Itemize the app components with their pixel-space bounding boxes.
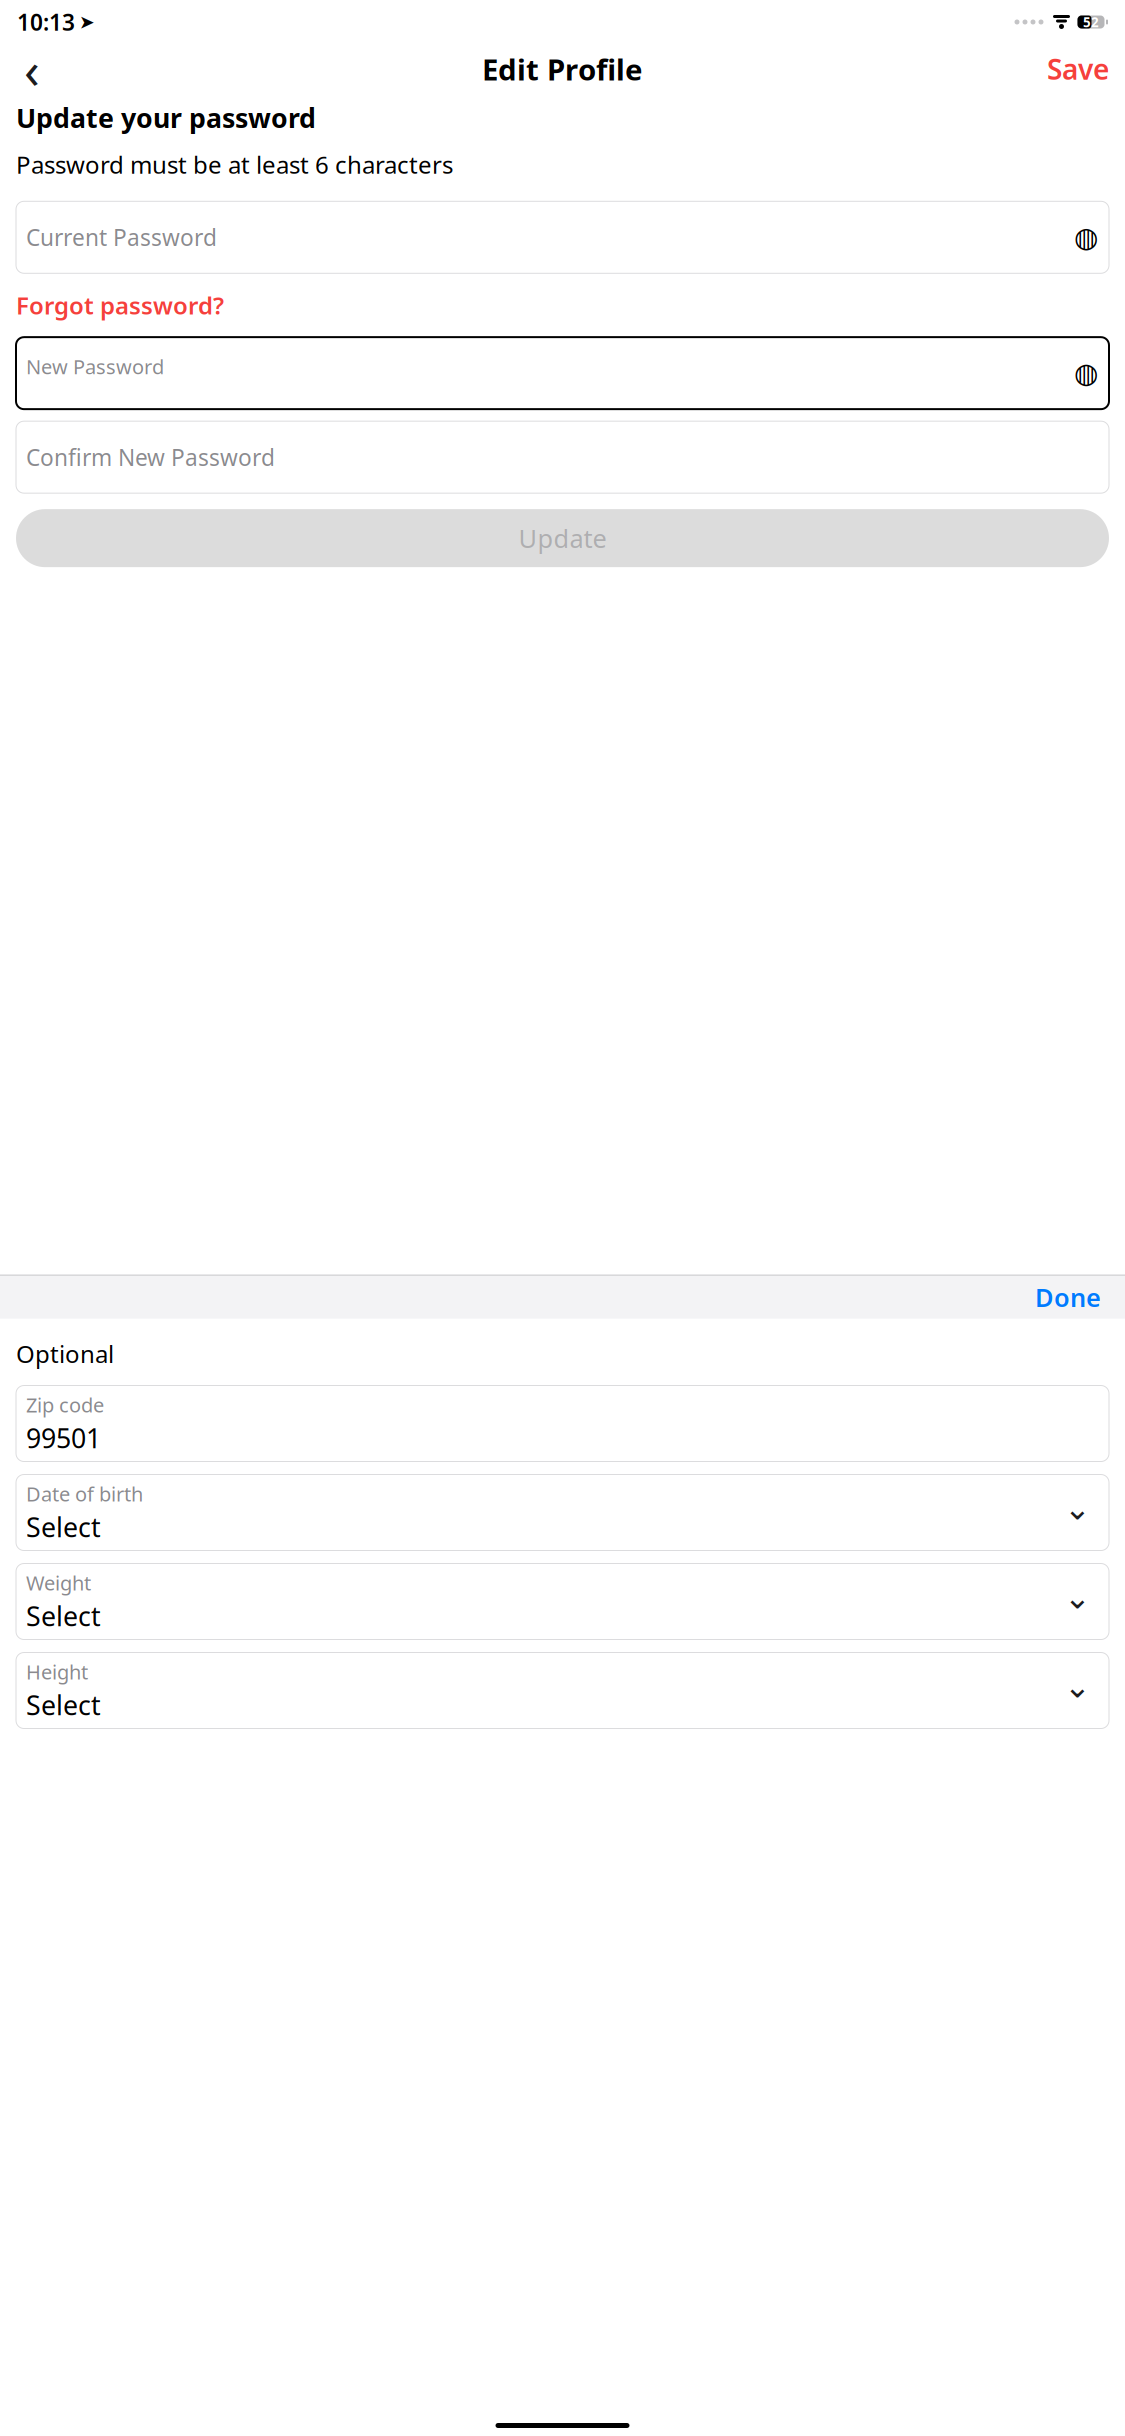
staticText: Select	[26, 1687, 101, 1722]
button[interactable]: Forgot password?	[16, 285, 224, 325]
button[interactable]: Back	[10, 47, 54, 91]
button[interactable]: Done	[1025, 1274, 1111, 1320]
staticText: Optional	[16, 1338, 114, 1369]
staticText: Done	[1035, 1280, 1101, 1314]
staticText: Current Password	[26, 222, 217, 252]
staticText: Edit Profile	[482, 49, 643, 88]
button[interactable]: Date of birth	[16, 1474, 1109, 1550]
staticText: ‹	[24, 35, 40, 103]
button[interactable]: Save	[1041, 47, 1115, 91]
button[interactable]: New Password	[16, 337, 1109, 409]
staticText: New Password	[26, 353, 164, 380]
staticText: Height	[26, 1658, 88, 1685]
button[interactable]: Confirm New Password	[16, 421, 1109, 493]
staticText: Update	[518, 521, 606, 555]
staticText: Select	[26, 1509, 101, 1544]
staticText: Date of birth	[26, 1480, 143, 1507]
staticText: Weight	[26, 1569, 91, 1596]
button[interactable]: Update	[16, 509, 1109, 567]
staticText: Password must be at least 6 characters	[16, 148, 453, 180]
staticText: ⌄	[1064, 1490, 1091, 1527]
button[interactable]: Weight	[16, 1563, 1109, 1639]
staticText: 99501	[26, 1420, 101, 1455]
staticText: Update your password	[16, 100, 316, 135]
button[interactable]: Current Password	[16, 201, 1109, 273]
staticText: Confirm New Password	[26, 442, 275, 472]
staticText: ◍	[1074, 357, 1098, 389]
staticText: ⌄	[1064, 1579, 1091, 1616]
button[interactable]: Height	[16, 1652, 1109, 1728]
button[interactable]: Zip code	[16, 1385, 1109, 1461]
staticText: Zip code	[26, 1391, 104, 1418]
staticText: Save	[1047, 50, 1109, 88]
staticText: ⌄	[1064, 1668, 1091, 1705]
staticText: Select	[26, 1598, 101, 1633]
staticText: ➤	[79, 11, 95, 33]
staticText: ◍	[1074, 221, 1098, 253]
staticText: 52	[1083, 13, 1099, 31]
staticText: 10:13	[17, 7, 75, 37]
staticText: Forgot password?	[16, 289, 224, 321]
